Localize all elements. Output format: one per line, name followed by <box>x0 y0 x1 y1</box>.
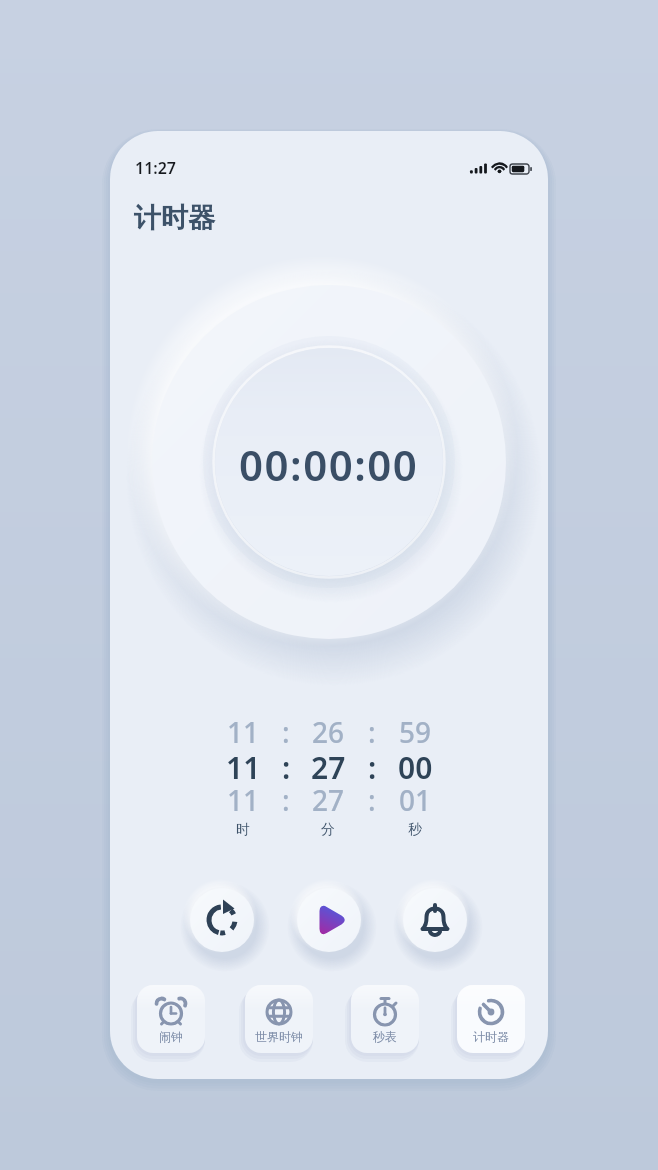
staticText: : <box>282 747 291 781</box>
staticText: 闹钟 <box>159 1029 183 1044</box>
staticText: : <box>282 781 290 815</box>
button[interactable]: 计时器 <box>457 985 525 1053</box>
staticText: 59 <box>399 713 432 747</box>
staticText: : <box>282 713 290 747</box>
button[interactable] <box>190 888 254 952</box>
staticText: 秒表 <box>373 1029 397 1044</box>
staticText: 分 <box>321 821 335 839</box>
staticText: 计时器 <box>134 201 215 235</box>
button[interactable]: 闹钟 <box>137 985 205 1053</box>
staticText: 世界时钟 <box>255 1029 303 1044</box>
staticText: : <box>368 747 377 781</box>
staticText: : <box>368 781 376 815</box>
staticText: 11 <box>227 781 260 815</box>
staticText: 11 <box>227 713 260 747</box>
staticText: 11 <box>226 747 261 781</box>
button[interactable] <box>403 888 467 952</box>
staticText: 00:00:00 <box>239 436 419 488</box>
staticText: 11:27 <box>135 157 177 177</box>
staticText: 26 <box>312 713 345 747</box>
staticText: 计时器 <box>473 1029 509 1044</box>
staticText: 时 <box>236 821 250 839</box>
staticText: : <box>368 713 376 747</box>
button[interactable]: 秒表 <box>351 985 419 1053</box>
staticText: 秒 <box>408 821 422 839</box>
staticText: 27 <box>311 747 346 781</box>
staticText: 00 <box>398 747 433 781</box>
button[interactable] <box>297 888 361 952</box>
button[interactable]: 世界时钟 <box>245 985 313 1053</box>
staticText: 01 <box>399 781 432 815</box>
staticText: 27 <box>312 781 345 815</box>
